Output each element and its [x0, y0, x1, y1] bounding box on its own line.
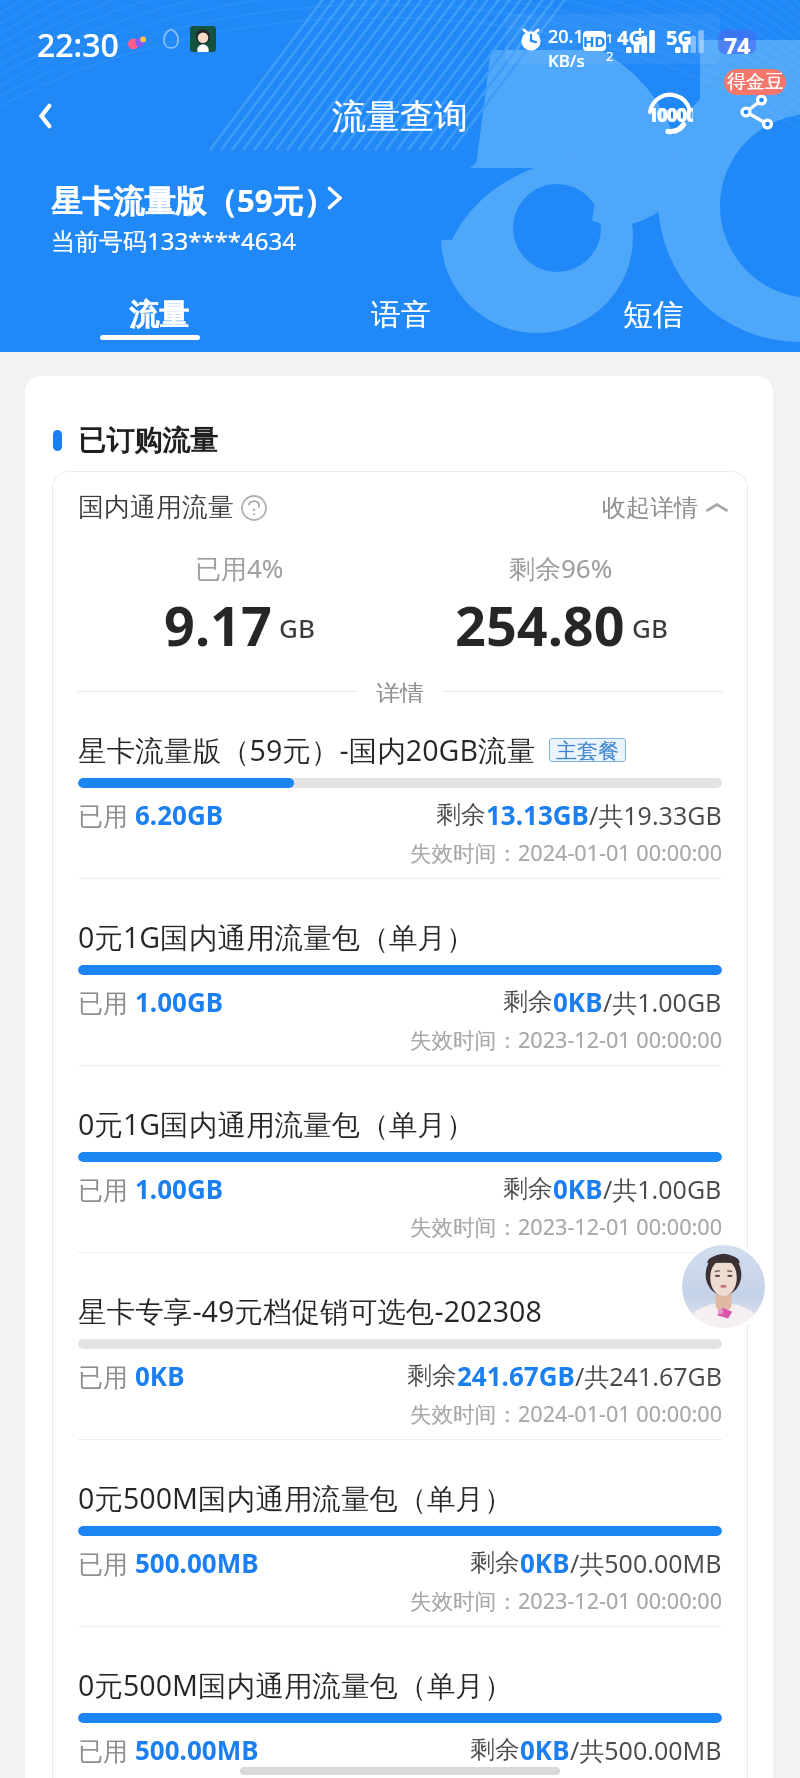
staticText: 0KB — [520, 1545, 570, 1580]
staticText: /共241.67GB — [575, 1359, 722, 1393]
button[interactable]: 流量 — [89, 280, 229, 348]
staticText: 失效时间：2023-12-01 00:00:00 — [410, 1773, 722, 1778]
staticText: 已订购流量 — [78, 423, 218, 458]
staticText: 剩余 — [407, 1360, 457, 1391]
staticText: HD — [583, 31, 606, 51]
staticText: 0KB — [520, 1732, 570, 1767]
staticText: 详情 — [376, 679, 424, 703]
staticText: 剩余 — [503, 1173, 553, 1204]
button[interactable]: 收起详情 — [602, 493, 729, 523]
staticText: 星卡流量版（59元） — [51, 179, 335, 219]
button[interactable]: Back — [18, 88, 74, 144]
staticText: 收起详情 — [602, 493, 698, 523]
button[interactable]: 语音 — [331, 280, 471, 348]
staticText: /共1.00GB — [603, 1172, 722, 1206]
staticText: 剩余 — [436, 799, 486, 830]
staticText: /共1.00GB — [603, 985, 722, 1019]
staticText: 500.00MB — [135, 1732, 259, 1767]
staticText: 0KB — [135, 1358, 185, 1393]
staticText: 5G — [666, 24, 692, 51]
staticText: 失效时间：2024-01-01 00:00:00 — [410, 1399, 722, 1429]
staticText: 已用 — [78, 798, 135, 832]
staticText: 20.1 — [548, 24, 584, 49]
button[interactable]: 短信 — [583, 280, 723, 348]
staticText: KB/s — [548, 49, 585, 72]
staticText: 0KB — [553, 1171, 603, 1206]
staticText: 已用 — [78, 1172, 135, 1206]
staticText: 流量 — [129, 296, 189, 334]
staticText: 主套餐 — [556, 738, 619, 762]
staticText: 2 — [606, 47, 614, 65]
staticText: /共500.00MB — [570, 1546, 722, 1580]
button[interactable]: Online customer service — [679, 1242, 768, 1331]
staticText: 0元1G国内通用流量包（单月） — [78, 917, 475, 956]
staticText: 0元1G国内通用流量包（单月） — [78, 1104, 475, 1143]
staticText: 星卡专享-49元档促销可选包-202308 — [78, 1291, 542, 1330]
staticText: 1 — [606, 29, 614, 47]
staticText: 已用 — [78, 1733, 135, 1767]
staticText: /共19.33GB — [589, 798, 722, 832]
staticText: 1.00GB — [135, 1171, 224, 1206]
staticText: 0元500M国内通用流量包（单月） — [78, 1478, 513, 1517]
staticText: 10000 — [647, 102, 693, 128]
staticText: 剩余 — [470, 1547, 520, 1578]
staticText: 13.13GB — [486, 797, 589, 832]
staticText: 已用 — [78, 1359, 135, 1393]
staticText: 已用 — [78, 985, 135, 1019]
staticText: 星卡流量版（59元）-国内20GB流量 — [78, 730, 536, 769]
staticText: 剩余96% — [509, 550, 613, 586]
staticText: 失效时间：2024-01-01 00:00:00 — [410, 838, 722, 868]
button[interactable]: Share — [727, 83, 786, 142]
staticText: 语音 — [371, 296, 431, 334]
staticText: 国内通用流量 — [78, 491, 234, 524]
staticText: 6.20GB — [135, 797, 224, 832]
staticText: 当前号码133****4634 — [51, 224, 296, 257]
staticText: 失效时间：2023-12-01 00:00:00 — [410, 1586, 722, 1616]
staticText: GB — [632, 610, 668, 645]
button[interactable]: 星卡流量版（59元） — [51, 179, 351, 219]
staticText: 500.00MB — [135, 1545, 259, 1580]
staticText: 已用 — [78, 1546, 135, 1580]
staticText: 短信 — [623, 296, 683, 334]
staticText: 失效时间：2023-12-01 00:00:00 — [410, 1212, 722, 1242]
staticText: 剩余 — [503, 986, 553, 1017]
staticText: 22:30 — [37, 23, 119, 67]
staticText: 9.17 — [164, 588, 272, 662]
staticText: 241.67GB — [457, 1358, 575, 1393]
button[interactable]: 得金豆 — [724, 69, 786, 95]
staticText: 失效时间：2023-12-01 00:00:00 — [410, 1025, 722, 1055]
staticText: /共500.00MB — [570, 1733, 722, 1767]
staticText: 已用4% — [195, 550, 284, 586]
staticText: 74 — [724, 30, 751, 54]
staticText: 1.00GB — [135, 984, 224, 1019]
staticText: 得金豆 — [727, 70, 784, 94]
button[interactable]: 10000 hotline — [639, 84, 700, 145]
staticText: 剩余 — [470, 1734, 520, 1765]
staticText: GB — [279, 610, 315, 645]
staticText: 0元500M国内通用流量包（单月） — [78, 1665, 513, 1704]
staticText: 流量查询 — [332, 95, 468, 138]
staticText: 0KB — [553, 984, 603, 1019]
staticText: 254.80 — [455, 588, 625, 662]
staticText: 4G — [617, 24, 643, 51]
